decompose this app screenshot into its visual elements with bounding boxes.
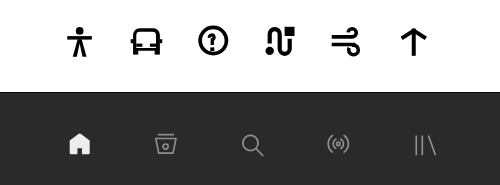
button[interactable]: Search [209,93,295,185]
button[interactable]: Route [247,0,313,80]
button[interactable]: Orders [123,93,209,185]
button[interactable]: Library [382,93,468,185]
button[interactable]: Help [180,0,246,80]
button[interactable]: Nearby [295,93,381,185]
button[interactable]: Air quality [314,0,380,80]
button[interactable]: Scroll to top [381,0,447,80]
button[interactable]: Home [37,93,123,185]
button[interactable]: Bus [113,0,179,80]
button[interactable]: Accessibility [47,0,113,80]
